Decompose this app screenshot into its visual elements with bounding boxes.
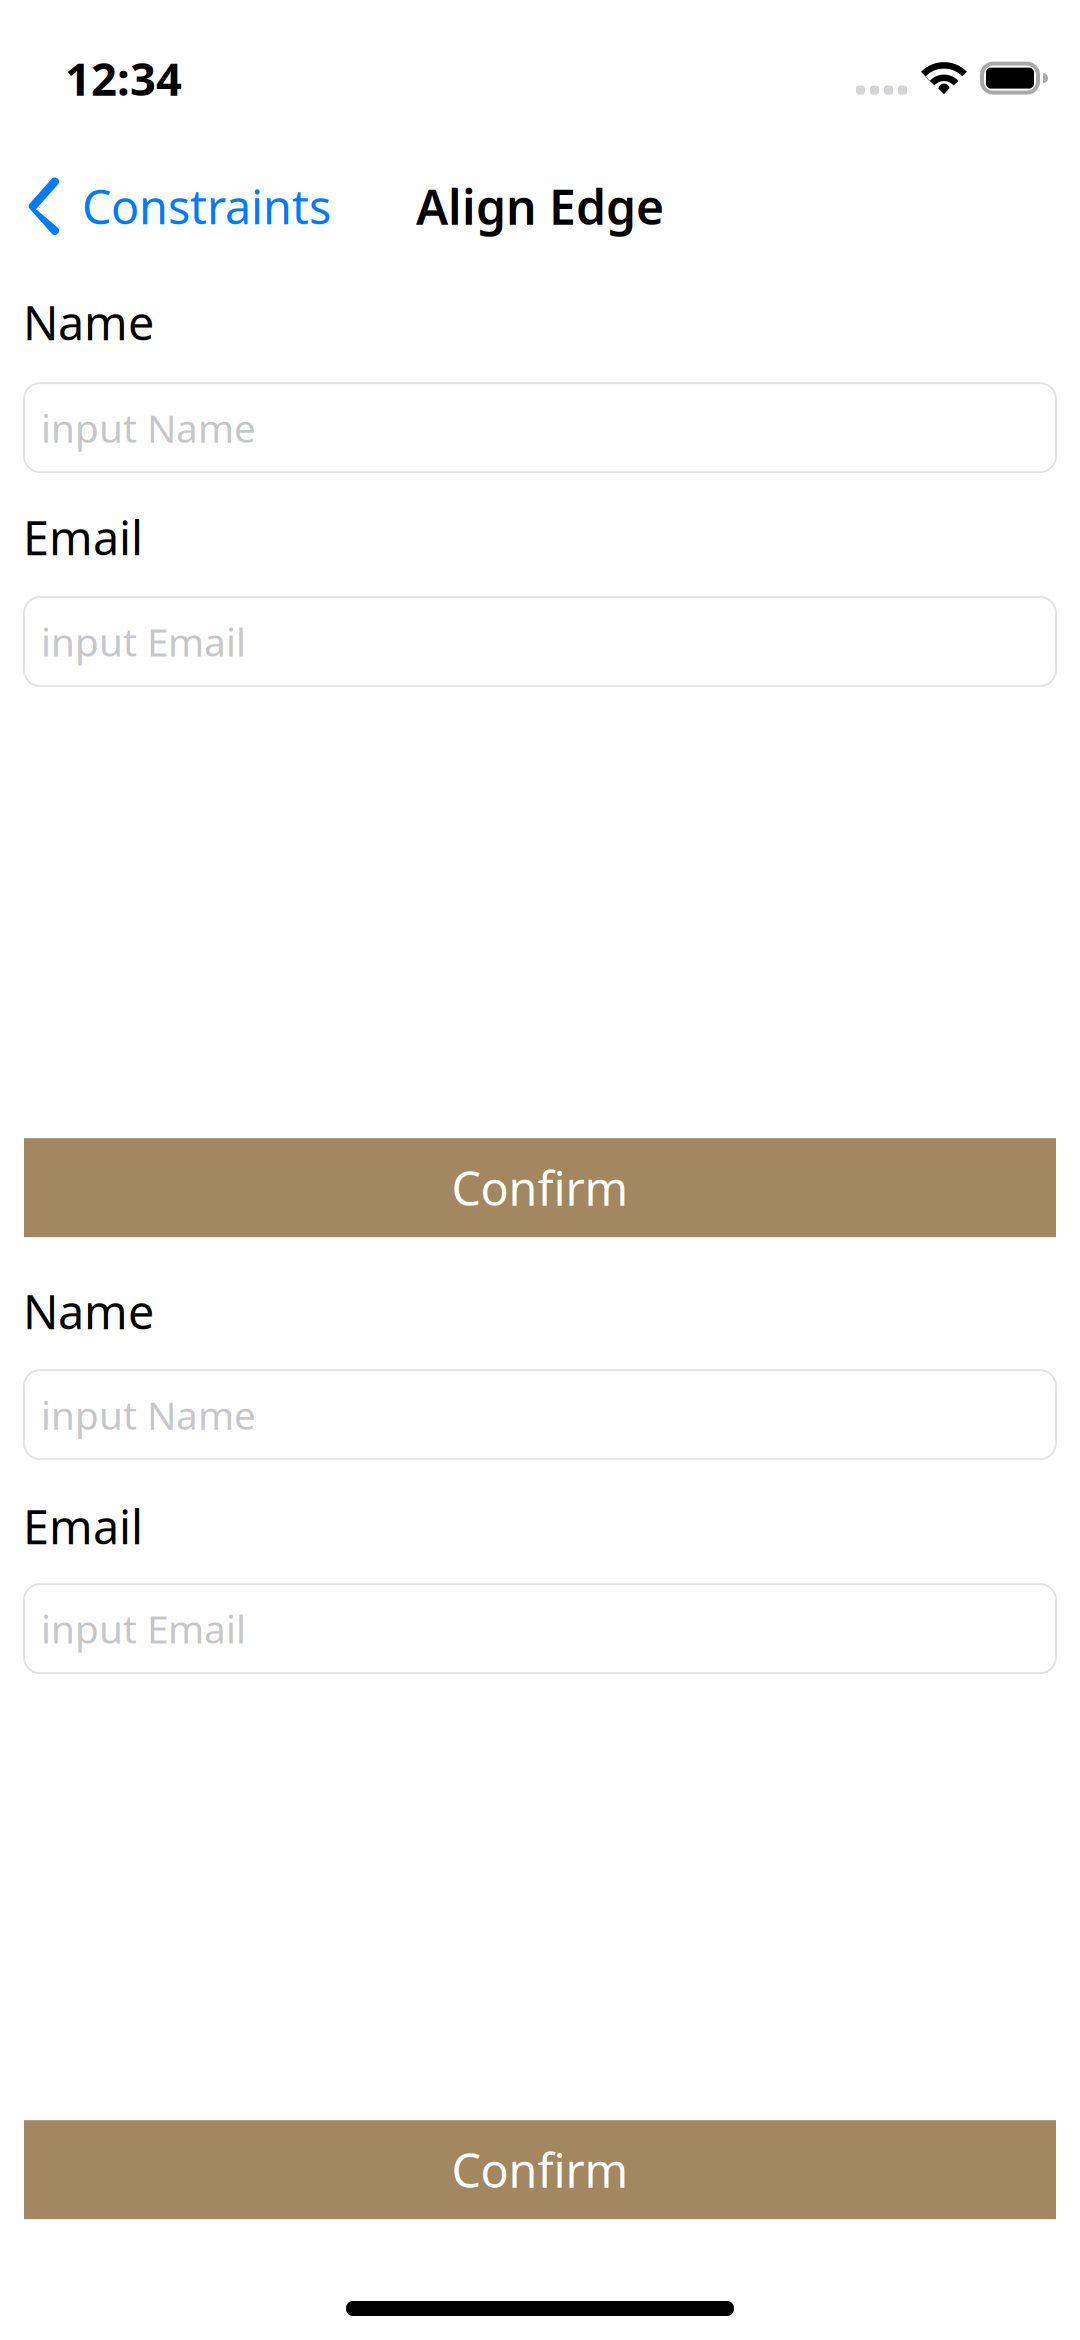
staticText: Align Edge	[416, 174, 664, 238]
button[interactable]: Back to Constraints	[0, 171, 351, 241]
staticText: Email	[23, 1495, 143, 1557]
button[interactable]: input Name	[24, 1370, 1056, 1459]
button[interactable]: input Name	[24, 383, 1056, 472]
button[interactable]: input Email	[24, 597, 1056, 686]
staticText: input Name	[41, 1389, 256, 1440]
staticText: input Email	[41, 1603, 246, 1654]
staticText: Confirm	[451, 1157, 628, 1219]
staticText: Name	[23, 1280, 154, 1342]
staticText: Name	[23, 291, 154, 353]
staticText: Email	[23, 506, 143, 568]
staticText: 12:34	[65, 48, 182, 108]
button[interactable]: input Email	[24, 1584, 1056, 1673]
button[interactable]: Confirm	[24, 2120, 1056, 2219]
staticText: input Email	[41, 616, 246, 667]
staticText: Confirm	[451, 2139, 628, 2201]
staticText: Constraints	[82, 175, 331, 237]
staticText: input Name	[41, 402, 256, 453]
button[interactable]: Confirm	[24, 1138, 1056, 1237]
